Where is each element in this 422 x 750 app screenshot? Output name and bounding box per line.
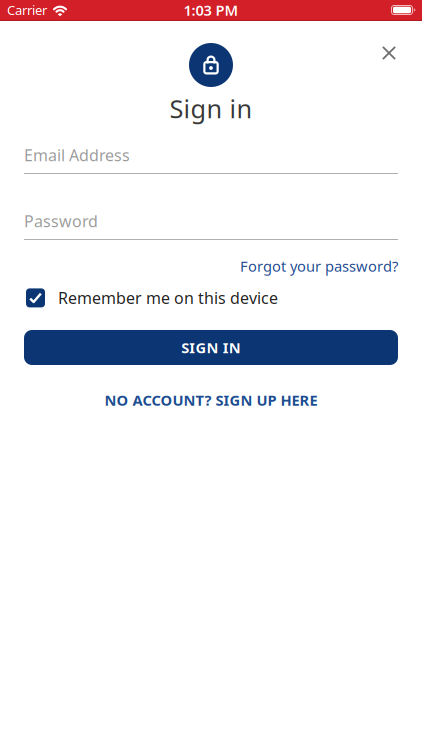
button[interactable]: Close	[376, 40, 402, 66]
staticText: Forgot your password?	[240, 256, 398, 276]
staticText: SIGN IN	[181, 337, 241, 357]
button[interactable]: Password	[24, 212, 398, 239]
staticText: Sign in	[169, 91, 252, 126]
button[interactable]: Email Address	[24, 146, 398, 173]
staticText: NO ACCOUNT? SIGN UP HERE	[104, 390, 317, 410]
button[interactable]: SIGN IN	[24, 330, 398, 365]
staticText: 1:03 PM	[183, 0, 238, 20]
button[interactable]: Remember me on this device	[26, 287, 278, 309]
staticText: Remember me on this device	[58, 287, 278, 309]
staticText: Carrier	[7, 1, 47, 19]
staticText: Password	[24, 210, 98, 232]
staticText: Email Address	[24, 144, 130, 166]
button[interactable]: NO ACCOUNT? SIGN UP HERE	[104, 390, 317, 410]
button[interactable]: Forgot your password?	[240, 256, 398, 276]
